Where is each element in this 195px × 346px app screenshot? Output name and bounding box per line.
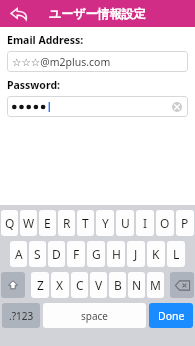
- staticText: space: [81, 309, 108, 323]
- button[interactable]: ☆☆☆@m2plus.com: [7, 51, 188, 72]
- staticText: Q: [5, 215, 15, 231]
- button[interactable]: C: [71, 272, 88, 298]
- staticText: Done: [158, 309, 185, 323]
- button[interactable]: F: [67, 241, 85, 267]
- staticText: S: [34, 246, 41, 262]
- staticText: X: [56, 277, 64, 293]
- staticText: .?123: [9, 309, 34, 323]
- button[interactable]: Q: [1, 210, 18, 236]
- staticText: ユーザー情報設定: [49, 6, 146, 21]
- staticText: ☆☆☆@m2plus.com: [12, 55, 111, 69]
- button[interactable]: B: [109, 272, 126, 298]
- staticText: Y: [102, 215, 109, 231]
- staticText: Email Address:: [7, 33, 84, 47]
- staticText: J: [134, 246, 138, 262]
- button[interactable]: space: [43, 303, 146, 328]
- button[interactable]: P: [176, 210, 194, 236]
- button[interactable]: D: [48, 241, 65, 267]
- staticText: U: [121, 215, 130, 231]
- staticText: E: [44, 215, 51, 231]
- button[interactable]: E: [39, 210, 56, 236]
- button[interactable]: U: [116, 210, 134, 236]
- staticText: M: [150, 277, 161, 293]
- staticText: I: [143, 215, 148, 231]
- button[interactable]: H: [107, 241, 125, 267]
- button[interactable]: Backspace: [170, 272, 194, 298]
- button[interactable]: Shift: [1, 272, 25, 298]
- button[interactable]: O: [156, 210, 174, 236]
- staticText: B: [114, 277, 122, 293]
- staticText: H: [112, 246, 121, 262]
- staticText: Password:: [7, 78, 60, 92]
- button[interactable]: L: [167, 241, 185, 267]
- staticText: F: [73, 246, 80, 262]
- staticText: R: [63, 215, 71, 231]
- staticText: A: [15, 246, 23, 262]
- button[interactable]: Clear text: [171, 101, 183, 113]
- button[interactable]: R: [58, 210, 75, 236]
- button[interactable]: X: [51, 272, 69, 298]
- button[interactable]: A: [10, 241, 27, 267]
- staticText: D: [52, 246, 61, 262]
- button[interactable]: Z: [31, 272, 49, 298]
- button[interactable]: M: [147, 272, 164, 298]
- button[interactable]: G: [87, 241, 105, 267]
- button[interactable]: V: [90, 272, 107, 298]
- staticText: L: [173, 246, 180, 262]
- button[interactable]: J: [127, 241, 145, 267]
- button[interactable]: K: [147, 241, 165, 267]
- staticText: C: [76, 277, 84, 293]
- staticText: K: [152, 246, 160, 262]
- button[interactable]: Clear text: [7, 96, 188, 117]
- button[interactable]: N: [128, 272, 145, 298]
- button[interactable]: Y: [96, 210, 114, 236]
- staticText: O: [160, 215, 170, 231]
- staticText: W: [23, 215, 35, 231]
- button[interactable]: I: [136, 210, 154, 236]
- button[interactable]: W: [20, 210, 37, 236]
- staticText: P: [181, 215, 189, 231]
- button[interactable]: S: [29, 241, 46, 267]
- staticText: T: [82, 215, 89, 231]
- staticText: G: [92, 246, 101, 262]
- staticText: N: [132, 277, 142, 293]
- button[interactable]: .?123: [2, 303, 40, 328]
- button[interactable]: T: [77, 210, 94, 236]
- button[interactable]: Back: [6, 2, 32, 26]
- button[interactable]: Done: [149, 303, 193, 328]
- staticText: Z: [37, 277, 44, 293]
- staticText: V: [95, 277, 103, 293]
